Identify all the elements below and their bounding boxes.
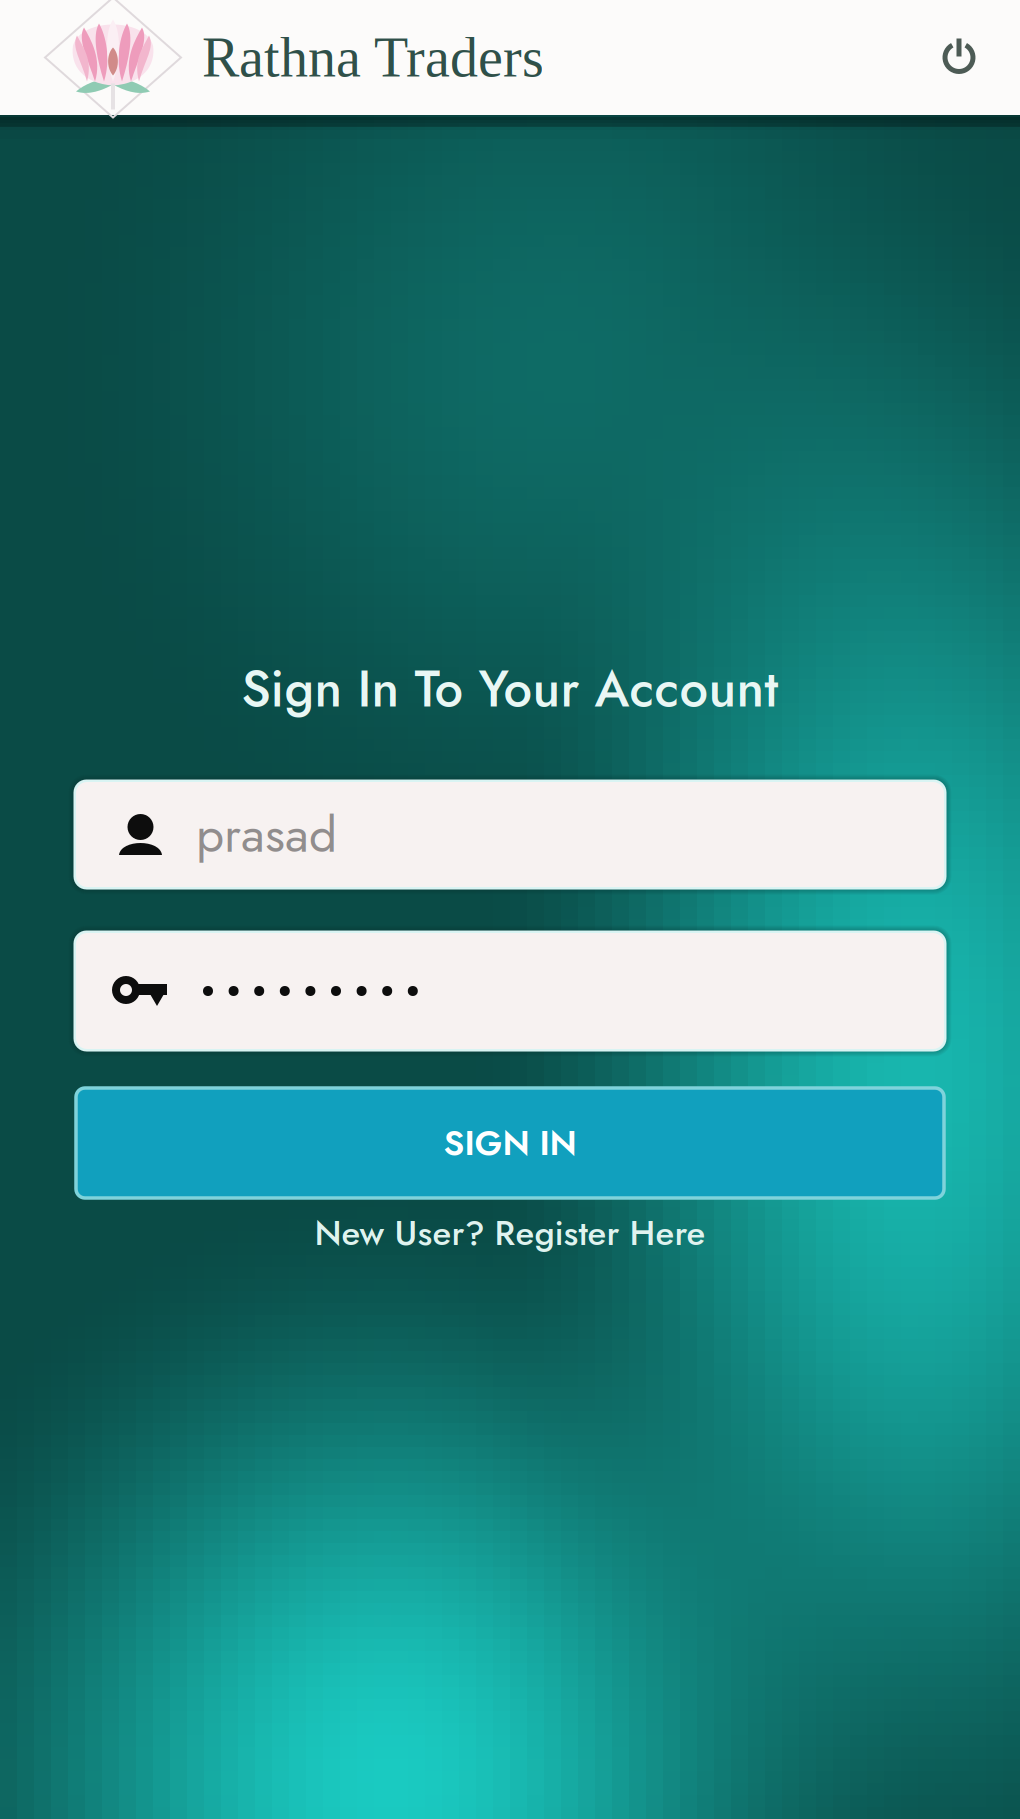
button[interactable]: New User? Register Here bbox=[76, 1210, 944, 1256]
staticText: prasad bbox=[196, 799, 337, 870]
button[interactable]: SIGN IN bbox=[76, 1088, 944, 1198]
button[interactable]: Log out bbox=[913, 0, 1005, 115]
staticText: SIGN IN bbox=[443, 1118, 576, 1168]
staticText: Rathna Traders bbox=[202, 26, 544, 88]
staticText: New User? Register Here bbox=[314, 1208, 705, 1258]
staticText: Sign In To Your Account bbox=[241, 652, 778, 726]
